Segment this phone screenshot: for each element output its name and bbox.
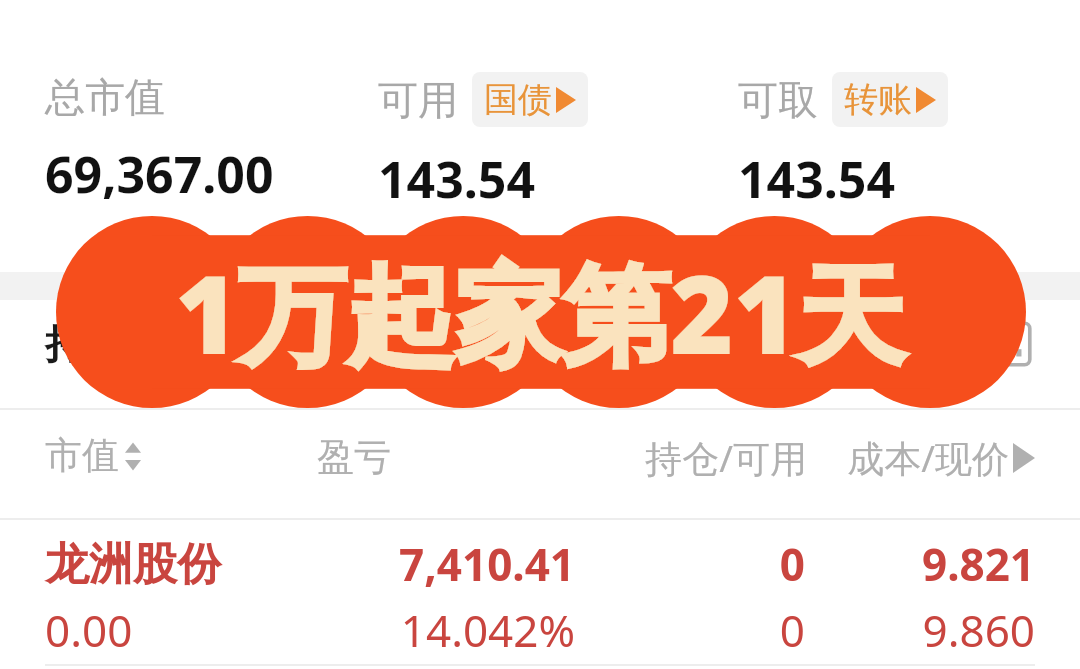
staticText: 14.042% <box>345 600 575 660</box>
button[interactable]: 总市值 <box>0 72 360 208</box>
button[interactable]: 持仓 <box>45 319 125 369</box>
staticText: 0 <box>685 600 805 660</box>
staticText: 143.54 <box>378 145 536 213</box>
staticText: 市值 <box>45 432 119 479</box>
staticText: 国债 <box>484 78 552 121</box>
button[interactable]: 转账 <box>832 72 948 127</box>
staticText: 龙洲股份 <box>45 537 345 592</box>
button[interactable]: 国债 <box>472 72 588 127</box>
staticText: 69,367.00 <box>45 140 274 208</box>
staticText: 7,410.41 <box>345 534 575 594</box>
button[interactable]: 龙洲股份 <box>0 534 1080 660</box>
staticText: 9.860 <box>805 600 1035 660</box>
staticText: 1万起家第21天 <box>175 239 905 387</box>
staticText: 总市值 <box>45 72 165 122</box>
staticText: 可用 <box>378 75 458 125</box>
staticText: 143.54 <box>738 145 896 213</box>
button[interactable]: 可取 <box>720 72 1080 213</box>
staticText: 盈亏 <box>317 434 567 481</box>
staticText: 9.821 <box>805 534 1035 594</box>
staticText: 持仓/可用 <box>567 432 807 483</box>
staticText: 转账 <box>844 78 912 121</box>
staticText: 0 <box>685 534 805 594</box>
button[interactable]: Chart <box>983 318 1035 370</box>
button[interactable]: 可用 <box>360 72 720 213</box>
staticText: 0.00 <box>45 600 345 660</box>
staticText: 可取 <box>738 75 818 125</box>
staticText: 成本/现价 <box>847 432 1009 483</box>
